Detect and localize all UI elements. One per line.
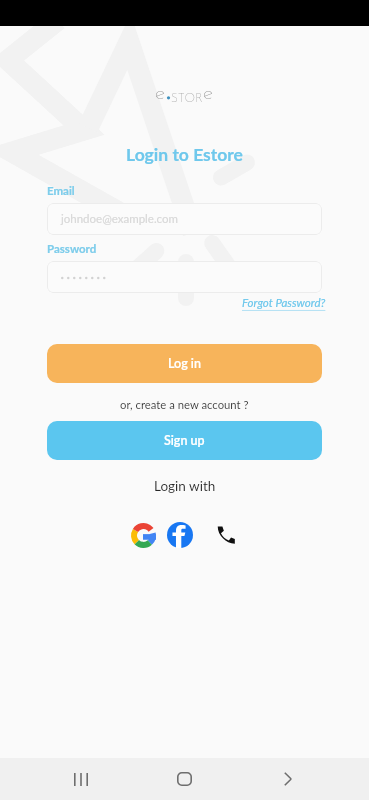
button[interactable]: Home [164,759,205,799]
staticText: e [203,83,214,105]
staticText: Login to Estore [126,144,243,165]
button[interactable]: Forgot Password? [242,296,326,310]
button[interactable]: Sign in with Google [130,522,156,548]
staticText: e [155,83,166,105]
staticText: Email [47,184,75,198]
staticText: johndoe@example.com [61,212,178,226]
button[interactable]: Sign in with phone [213,522,239,548]
button[interactable]: or, create a new account ? [120,398,249,412]
staticText: Log in [168,356,201,371]
staticText: Password [47,242,97,256]
button[interactable]: Sign up [47,421,322,460]
button[interactable] [47,261,322,293]
staticText: or, create a new account ? [120,398,249,412]
staticText: Sign up [164,433,205,448]
button[interactable]: Back [267,759,308,799]
staticText: Forgot Password? [242,296,326,310]
button[interactable]: Sign in with Facebook [167,522,193,548]
staticText: Login with [154,478,216,494]
button[interactable]: johndoe@example.com [47,203,322,235]
button[interactable]: Log in [47,344,322,383]
staticText: STOR [171,93,203,105]
button[interactable]: Recent apps [60,759,101,799]
